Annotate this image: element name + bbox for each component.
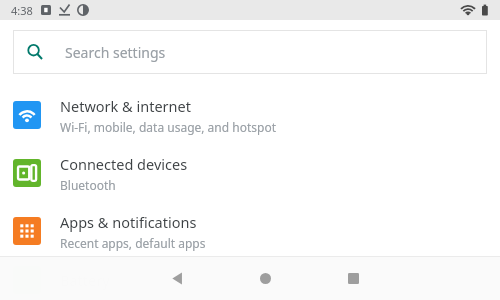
staticText: Connected devices bbox=[60, 154, 188, 174]
button[interactable]: Back bbox=[150, 256, 204, 300]
staticText: Apps & notifications bbox=[60, 212, 197, 232]
staticText: Network & internet bbox=[60, 96, 191, 116]
button[interactable]: Network & internet bbox=[0, 86, 500, 144]
staticText: Bluetooth bbox=[60, 177, 116, 193]
button[interactable]: Battery bbox=[0, 260, 500, 300]
other: Search bbox=[27, 44, 43, 60]
button[interactable]: Home bbox=[238, 256, 292, 300]
staticText: Wi-Fi, mobile, data usage, and hotspot bbox=[60, 119, 276, 135]
button[interactable]: Recent apps bbox=[326, 256, 380, 300]
button[interactable]: Connected devices bbox=[0, 144, 500, 202]
staticText: Search settings bbox=[65, 43, 166, 62]
staticText: Recent apps, default apps bbox=[60, 235, 206, 251]
button[interactable]: Search bbox=[13, 30, 487, 74]
button[interactable]: Apps & notifications bbox=[0, 202, 500, 260]
staticText: 4:38 bbox=[11, 3, 33, 18]
